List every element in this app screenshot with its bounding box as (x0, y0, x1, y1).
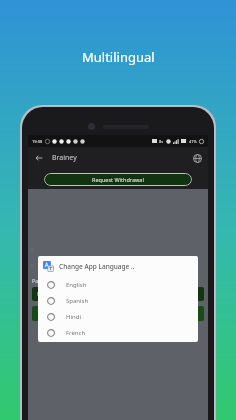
staticText: 8s (159, 139, 164, 144)
button[interactable]: Request Withdrawal (44, 173, 192, 186)
staticText: Spanish (66, 297, 89, 305)
button[interactable]: Language (191, 152, 203, 164)
staticText: Payment Infos (32, 277, 70, 284)
staticText: French (66, 329, 86, 337)
staticText: E (31, 263, 34, 270)
staticText: Enter Payment Account Infos.. (37, 291, 108, 298)
staticText: 41% (189, 139, 197, 144)
staticText: Request Withdrawal (92, 176, 144, 183)
button[interactable]: Enter Payment Account Infos.. (32, 287, 204, 301)
button[interactable]: Spanish (43, 293, 198, 309)
staticText: Brainey (52, 153, 77, 163)
button[interactable]: Back (33, 152, 45, 164)
staticText: S (31, 247, 34, 254)
button[interactable]: Hindi (43, 309, 198, 325)
staticText: Multilingual (82, 48, 155, 66)
staticText: 19:08 (32, 139, 43, 144)
button[interactable]: SEND REQUEST (32, 306, 204, 321)
staticText: Hindi (66, 313, 81, 321)
button[interactable]: French (43, 325, 198, 341)
button[interactable]: English (43, 277, 198, 293)
staticText: English (66, 281, 87, 289)
staticText: Change App Language .. (59, 262, 135, 271)
